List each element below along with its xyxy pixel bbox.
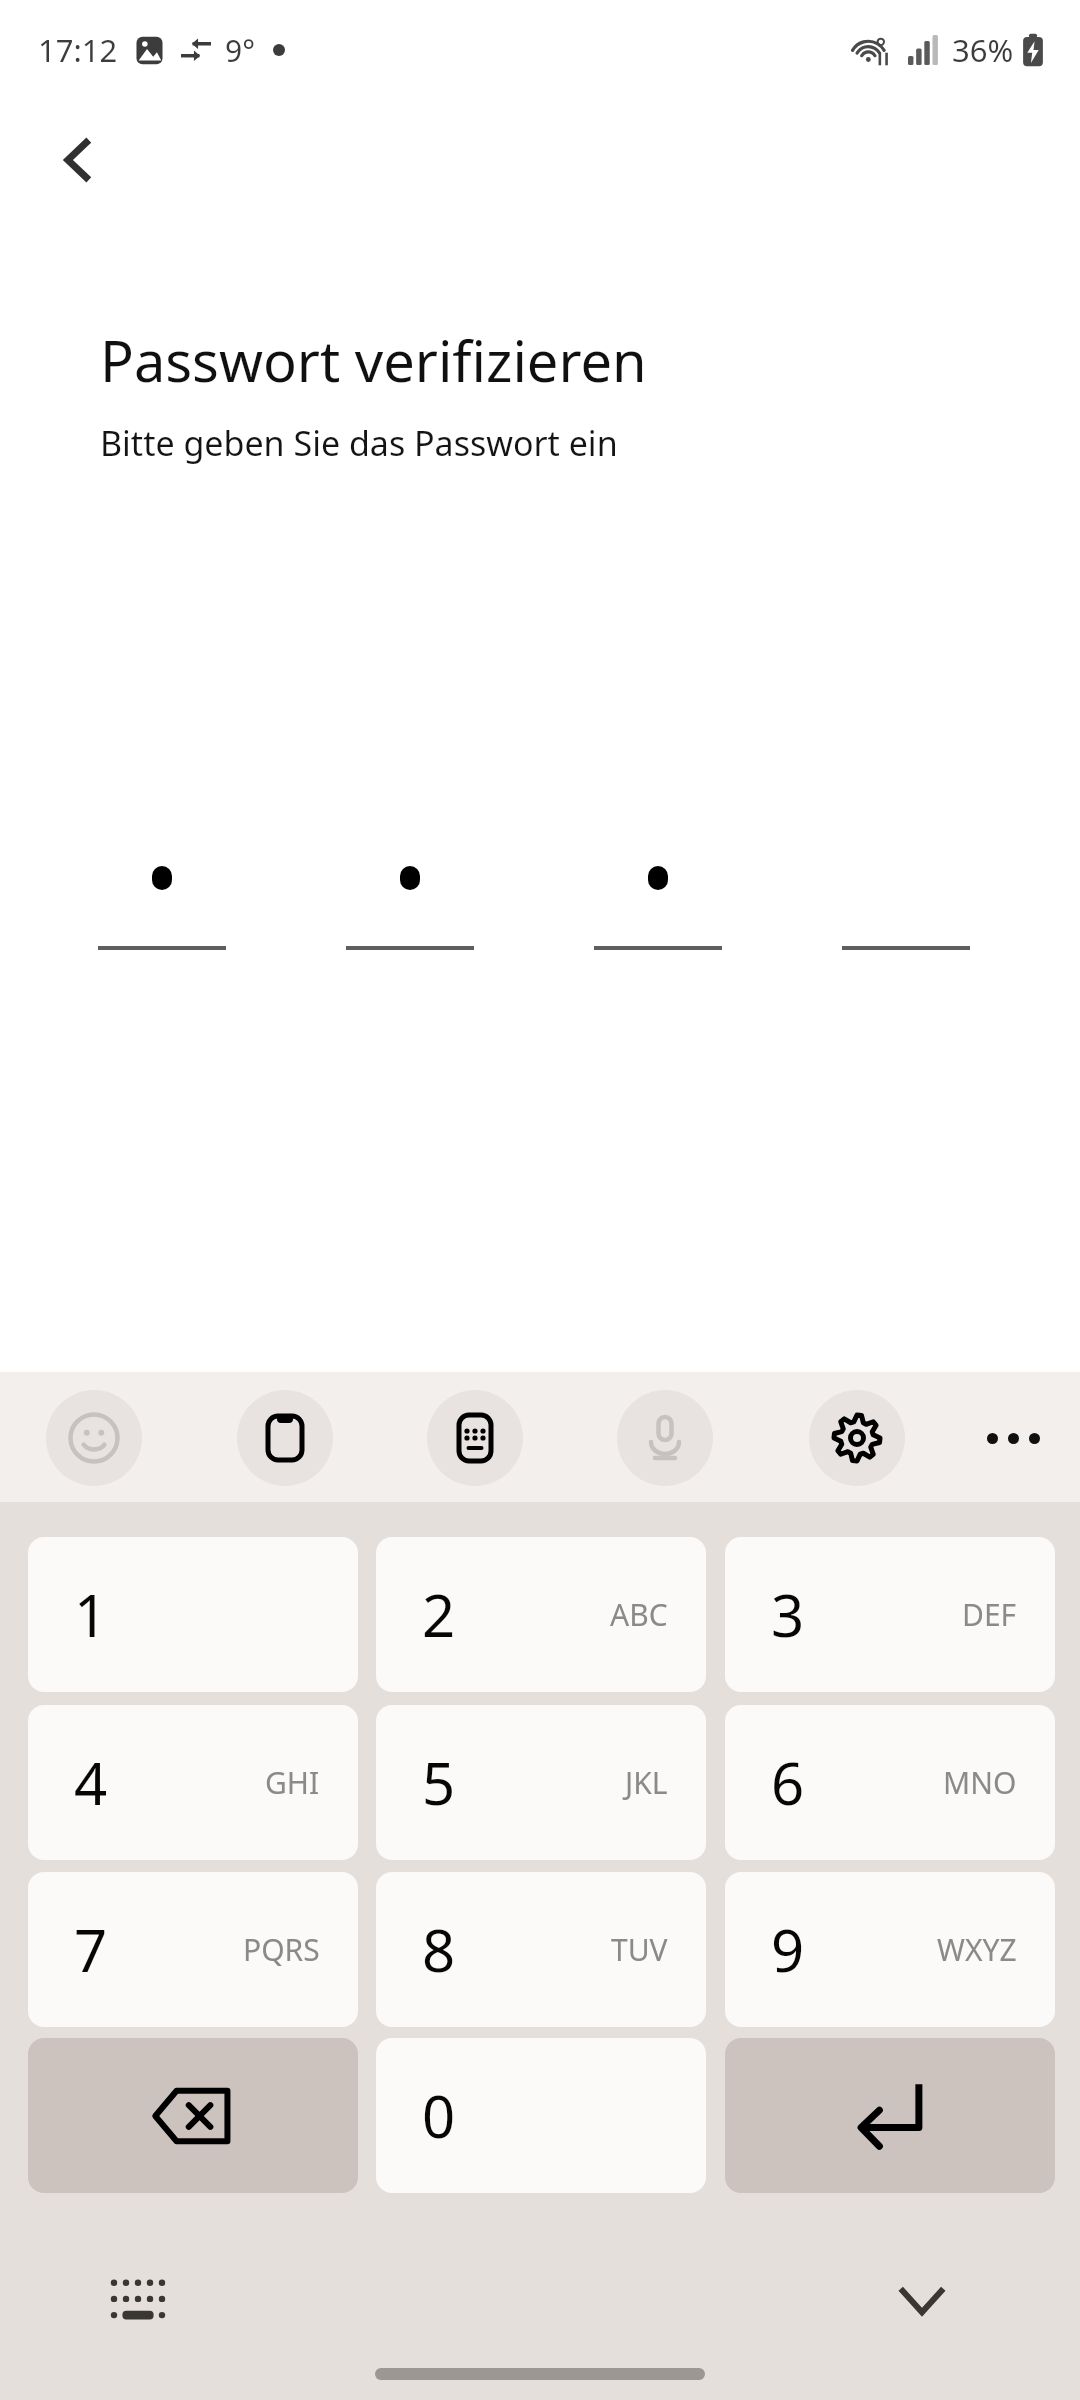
staticText: DEF	[962, 1594, 1017, 1635]
button[interactable]: 1	[28, 1537, 358, 1692]
staticText: 0	[422, 2076, 456, 2155]
button[interactable]: Tastatur wechseln	[98, 2260, 178, 2340]
button[interactable]: Tastaturoption	[809, 1390, 905, 1486]
button[interactable]: Tastaturoption	[617, 1390, 713, 1486]
staticText: 7	[74, 1910, 108, 1989]
button[interactable]: Tastaturoption	[237, 1390, 333, 1486]
button[interactable]: 4	[28, 1705, 358, 1860]
button[interactable]: 2	[376, 1537, 706, 1692]
staticText: 5	[422, 1743, 456, 1822]
staticText: JKL	[625, 1762, 668, 1803]
staticText: Bitte geben Sie das Passwort ein	[100, 420, 618, 466]
button[interactable]: Tastaturoption	[46, 1390, 142, 1486]
staticText: Passwort verifizieren	[100, 322, 647, 398]
staticText: 1	[74, 1575, 108, 1654]
staticText: 17:12	[38, 29, 118, 71]
button[interactable]: Eingabe	[725, 2038, 1055, 2193]
staticText: 8	[422, 1910, 456, 1989]
staticText: MNO	[943, 1762, 1017, 1803]
staticText: 3	[771, 1575, 805, 1654]
staticText: PQRS	[243, 1929, 320, 1970]
staticText: GHI	[265, 1762, 320, 1803]
button[interactable]: 7	[28, 1872, 358, 2027]
staticText: 6	[771, 1743, 805, 1822]
button[interactable]: 8	[376, 1872, 706, 2027]
button[interactable]: 5	[376, 1705, 706, 1860]
staticText: 9	[771, 1910, 805, 1989]
staticText: TUV	[611, 1929, 668, 1970]
button[interactable]: 0	[376, 2038, 706, 2193]
button[interactable]: 6	[725, 1705, 1055, 1860]
button[interactable]: Mehr	[977, 1402, 1049, 1474]
staticText: 36%	[952, 29, 1014, 71]
staticText: 4	[74, 1743, 108, 1822]
button[interactable]: Tastatur schließen	[882, 2260, 962, 2340]
staticText: 2	[422, 1575, 456, 1654]
staticText: WXYZ	[937, 1929, 1017, 1970]
staticText: ABC	[610, 1594, 668, 1635]
button[interactable]: Löschen	[28, 2038, 358, 2193]
staticText: 9°	[225, 30, 255, 71]
button[interactable]: Tastaturoption	[427, 1390, 523, 1486]
button[interactable]: 9	[725, 1872, 1055, 2027]
button[interactable]: 3	[725, 1537, 1055, 1692]
button[interactable]: Zurück	[28, 110, 128, 210]
